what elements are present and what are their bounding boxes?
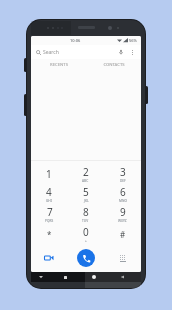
button[interactable]: 1: [31, 164, 67, 184]
staticText: CONTACTS: [103, 62, 125, 68]
staticText: 4: [46, 185, 52, 199]
button[interactable]: More options: [128, 48, 136, 56]
staticText: 5: [83, 185, 89, 199]
button[interactable]: RECENTS: [31, 59, 86, 71]
staticText: RECENTS: [50, 62, 68, 68]
staticText: 6: [120, 185, 126, 199]
button[interactable]: Search: [31, 45, 141, 59]
staticText: ABC: [82, 179, 89, 183]
button[interactable]: 3: [104, 164, 141, 184]
staticText: 8: [83, 205, 89, 219]
staticText: #: [120, 229, 126, 240]
staticText: DEF: [120, 179, 126, 183]
button[interactable]: 7: [31, 204, 67, 224]
button[interactable]: Back: [37, 273, 45, 281]
button[interactable]: Home: [90, 273, 98, 281]
staticText: JKL: [84, 199, 89, 203]
button[interactable]: Voice search: [117, 48, 125, 56]
staticText: 0: [83, 225, 89, 239]
button[interactable]: Dialpad: [104, 244, 141, 272]
button[interactable]: Video call: [31, 244, 67, 272]
staticText: 9: [120, 205, 126, 219]
button[interactable]: 0: [67, 224, 104, 244]
button[interactable]: *: [31, 224, 67, 244]
button[interactable]: Call: [77, 249, 95, 267]
staticText: PQRS: [45, 219, 54, 223]
staticText: 7: [47, 205, 53, 219]
button[interactable]: #: [104, 224, 141, 244]
staticText: TUV: [82, 219, 89, 223]
staticText: 1: [46, 167, 52, 181]
button[interactable]: Volume: [119, 273, 127, 281]
button[interactable]: CONTACTS: [86, 59, 141, 71]
button[interactable]: 6: [104, 184, 141, 204]
staticText: GHI: [46, 199, 52, 203]
button[interactable]: 8: [67, 204, 104, 224]
staticText: 10:06: [70, 38, 81, 43]
staticText: MNO: [119, 199, 127, 203]
button[interactable]: 4: [31, 184, 67, 204]
staticText: 56%: [129, 38, 137, 43]
staticText: 2: [83, 165, 89, 179]
staticText: *: [47, 229, 52, 240]
staticText: 3: [120, 165, 126, 179]
button[interactable]: Recents: [61, 273, 69, 281]
button[interactable]: 2: [67, 164, 104, 184]
staticText: Search: [43, 49, 59, 56]
button[interactable]: 9: [104, 204, 141, 224]
staticText: WXYZ: [118, 219, 127, 223]
staticText: +: [85, 239, 87, 243]
button[interactable]: 5: [67, 184, 104, 204]
